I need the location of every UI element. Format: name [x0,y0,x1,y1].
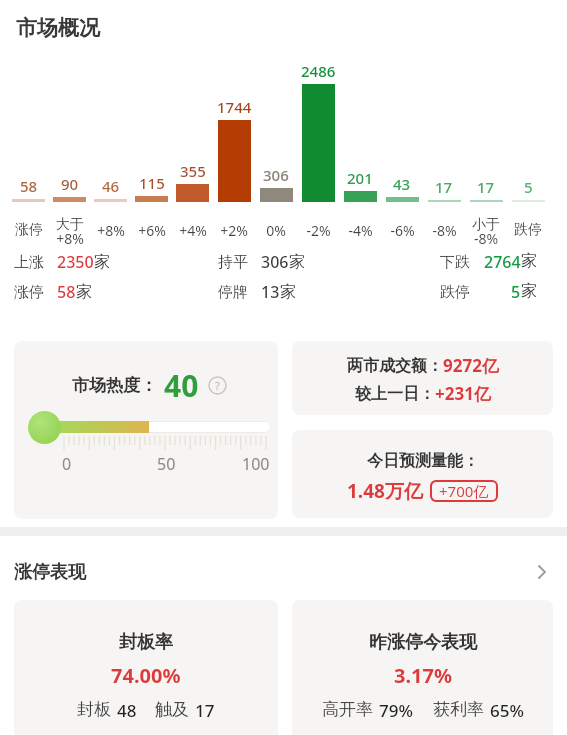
button[interactable]: 封板率 [14,600,278,735]
staticText: -2% [306,221,331,240]
staticText: 1.48万亿 [347,478,423,504]
staticText: 5 [511,281,521,303]
staticText: +700亿 [439,481,489,501]
staticText: 家 [521,251,537,271]
staticText: 获利率 [433,699,484,720]
staticText: 家 [521,281,537,301]
staticText: 上涨 [14,253,44,272]
staticText: 涨停表现 [14,561,86,584]
staticText: 2764 [484,251,521,273]
staticText: 201 [347,168,373,188]
button[interactable]: 今日预测量能： [292,430,553,518]
staticText: 持平 [218,253,248,272]
staticText: 355 [180,161,206,181]
staticText: 市场热度： [72,375,157,396]
button[interactable]: 涨停表现 [0,558,567,586]
staticText: 家 [280,282,296,302]
staticText: 涨停 [14,283,44,302]
staticText: 封板率 [119,631,173,654]
staticText: +231亿 [435,382,491,405]
staticText: 家 [289,252,305,272]
staticText: 115 [139,173,165,193]
staticText: 46 [102,176,120,196]
staticText: 停牌 [218,283,248,302]
staticText: +6% [138,221,166,240]
staticText: 3.17% [394,662,452,689]
staticText: 13 [261,281,280,303]
staticText: 小于 -8% [472,216,500,244]
staticText: 65% [490,699,524,722]
staticText: 48 [117,699,137,722]
staticText: 0 [62,453,72,475]
staticText: 50 [157,453,176,475]
staticText: 17 [477,177,495,197]
staticText: 40 [164,365,199,405]
staticText: 306 [263,165,289,185]
staticText: +4% [179,221,207,240]
staticText: 58 [57,281,76,303]
staticText: 100 [242,453,270,475]
staticText: 家 [94,252,110,272]
staticText: 家 [76,282,92,302]
staticText: 封板 [77,699,111,720]
button[interactable]: 昨涨停今表现 [292,600,553,735]
staticText: 5 [524,177,533,197]
staticText: 306 [261,251,289,273]
staticText: +8% [97,221,125,240]
staticText: 79% [379,699,413,722]
staticText: ? [215,378,220,393]
staticText: 两市成交额： [347,356,443,376]
staticText: 下跌 [440,253,470,272]
button[interactable]: 市场热度： [14,341,278,519]
staticText: -8% [432,221,457,240]
staticText: 较上一日： [355,384,435,404]
staticText: 昨涨停今表现 [369,631,477,654]
staticText: 43 [393,174,411,194]
staticText: 2350 [57,251,94,273]
staticText: -4% [348,221,373,240]
staticText: 9272亿 [443,354,499,377]
staticText: 17 [195,699,215,722]
staticText: 触及 [155,699,189,720]
staticText: 市场概况 [16,15,100,41]
staticText: 跌停 [514,221,542,239]
staticText: 跌停 [440,283,470,302]
staticText: 1744 [217,97,252,117]
staticText: 涨停 [15,221,43,239]
staticText: 大于 +8% [56,216,84,244]
staticText: -6% [390,221,415,240]
staticText: +2% [220,221,248,240]
staticText: 90 [61,174,79,194]
staticText: 今日预测量能： [367,451,479,471]
staticText: 高开率 [322,699,373,720]
staticText: 0% [266,221,286,240]
staticText: 2486 [301,61,336,81]
button[interactable]: 两市成交额： [292,341,553,415]
staticText: 74.00% [111,662,181,689]
staticText: 58 [20,176,38,196]
staticText: 17 [435,177,453,197]
